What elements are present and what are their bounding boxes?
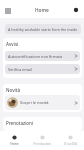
staticText: Il tuo ISA	[64, 142, 77, 146]
staticText: Scopri le novità	[20, 100, 49, 105]
button[interactable]: Autocertificazione non firmata	[5, 51, 80, 61]
staticText: Prenotazioni	[6, 120, 34, 126]
staticText: Novità	[6, 87, 21, 93]
staticText: A healthy workable starts from the insid…	[8, 27, 78, 32]
button[interactable]: Scopri le novità	[5, 95, 80, 110]
staticText: Avvisi	[6, 41, 19, 47]
button[interactable]: Il tuo ISA	[56, 131, 84, 150]
button[interactable]: Prenotazioni	[28, 131, 56, 150]
staticText: Home	[35, 7, 49, 14]
staticText: Autocertificazione non firmata	[8, 54, 63, 59]
button[interactable]: Menu	[2, 5, 14, 17]
button[interactable]: Account	[70, 4, 82, 16]
staticText: Prenotazioni	[33, 142, 51, 146]
button[interactable]: Home	[0, 131, 28, 150]
button[interactable]: A healthy workable starts from the insid…	[5, 24, 81, 34]
button[interactable]: Verifica email	[5, 64, 80, 74]
staticText: Verifica email	[8, 67, 32, 72]
staticText: Home	[10, 142, 19, 146]
